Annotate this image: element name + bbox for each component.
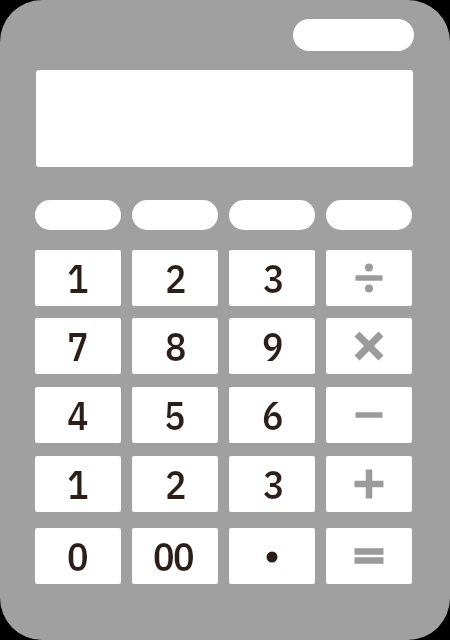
button[interactable] [132, 200, 218, 230]
button[interactable] [35, 250, 121, 306]
button[interactable] [229, 456, 315, 512]
button[interactable] [132, 318, 218, 374]
button[interactable] [132, 528, 218, 584]
button[interactable] [326, 318, 412, 374]
button[interactable] [35, 456, 121, 512]
button[interactable] [229, 318, 315, 374]
button[interactable] [326, 200, 412, 230]
button[interactable] [132, 250, 218, 306]
button[interactable] [326, 456, 412, 512]
button[interactable] [35, 318, 121, 374]
button[interactable] [229, 528, 315, 584]
button[interactable] [229, 200, 315, 230]
button[interactable] [229, 250, 315, 306]
button[interactable] [35, 200, 121, 230]
button[interactable] [326, 528, 412, 584]
button[interactable] [132, 387, 218, 443]
button[interactable] [326, 387, 412, 443]
button[interactable] [229, 387, 315, 443]
button[interactable] [326, 250, 412, 306]
button[interactable] [35, 387, 121, 443]
button[interactable] [132, 456, 218, 512]
button[interactable] [35, 528, 121, 584]
